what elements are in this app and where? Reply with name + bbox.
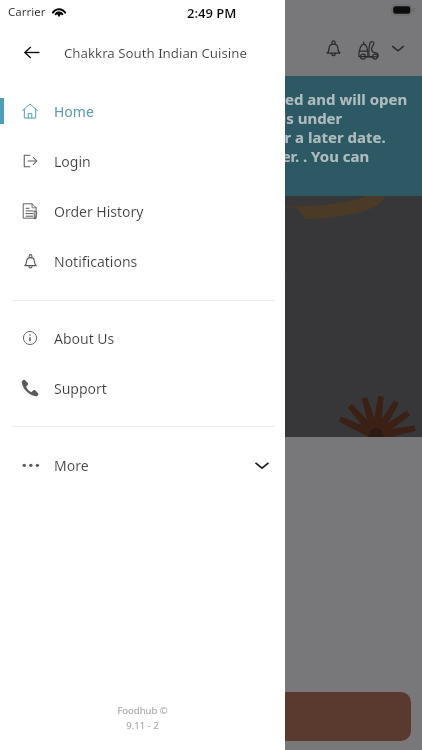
button[interactable]: Back: [14, 34, 50, 70]
staticText: 9.11 - 2: [126, 719, 159, 732]
button[interactable]: Order History: [0, 186, 285, 236]
staticText: Notifications: [54, 252, 138, 271]
button[interactable]: More: [0, 440, 285, 490]
staticText: preparation is under: [189, 108, 343, 127]
staticText: Login: [54, 152, 91, 171]
button[interactable]: Support: [0, 363, 285, 413]
staticText: About Us: [54, 329, 115, 348]
button[interactable]: Expand: [388, 38, 408, 58]
button[interactable]: Home: [0, 86, 285, 136]
staticText: Try again later. . You can: [189, 146, 370, 165]
staticText: Order History: [54, 202, 144, 221]
staticText: Foodhub ©: [117, 704, 168, 717]
staticText: This store is closed and will open: [163, 89, 408, 108]
button[interactable]: Login: [0, 136, 285, 186]
staticText: way for a later date.: [235, 127, 386, 146]
staticText: More: [54, 456, 89, 475]
button[interactable]: Notifications: [0, 236, 285, 286]
button[interactable]: Delivery: [356, 37, 382, 63]
button[interactable]: [200, 692, 411, 741]
button[interactable]: About Us: [0, 313, 285, 363]
staticText: Support: [54, 379, 107, 398]
staticText: Carrier: [8, 4, 46, 18]
staticText: 2:49 PM: [187, 4, 237, 22]
staticText: Chakkra South Indian Cuisine: [64, 44, 247, 62]
button[interactable]: Notifications: [321, 36, 345, 60]
staticText: Home: [54, 102, 94, 121]
